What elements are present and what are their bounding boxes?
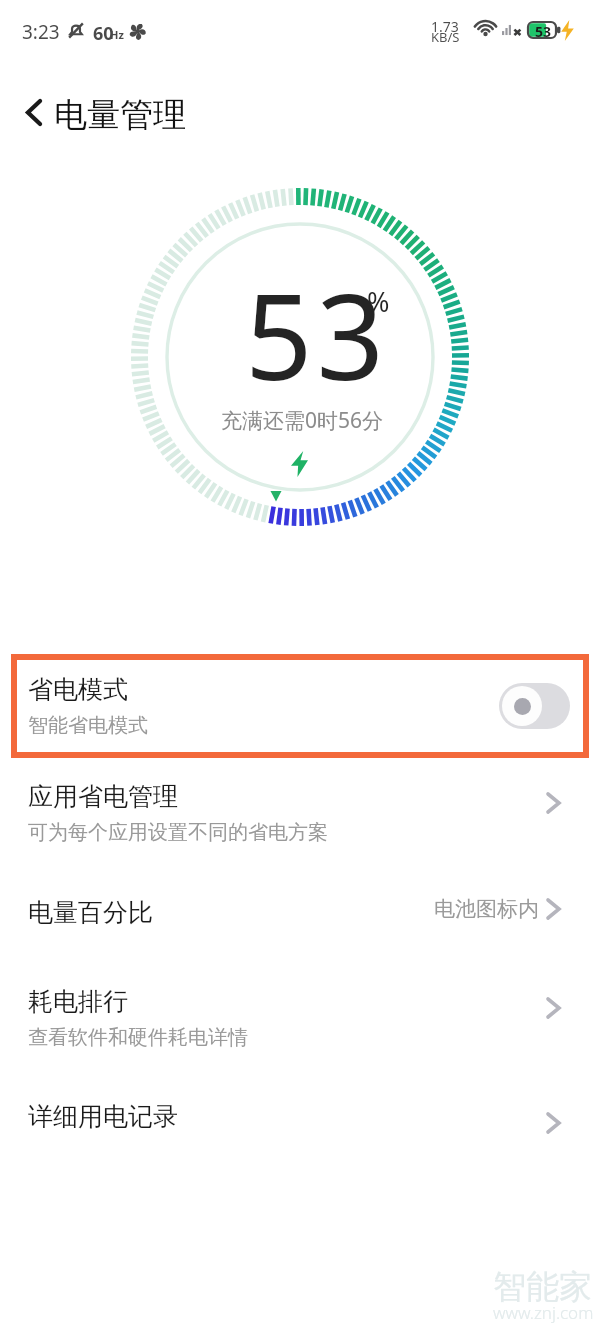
staticText: 1.73 <box>431 17 459 36</box>
staticText: Hz <box>110 27 124 42</box>
button[interactable]: 耗电排行 <box>0 963 600 1078</box>
staticText: 电量百分比 <box>28 897 153 928</box>
button[interactable]: 应用省电管理 <box>0 758 600 878</box>
staticText: 53 <box>535 22 552 40</box>
button[interactable]: Back <box>14 92 54 132</box>
staticText: 查看软件和硬件耗电详情 <box>28 1025 248 1050</box>
staticText: 智能家 <box>493 1266 592 1308</box>
button[interactable]: 电量百分比 <box>0 878 600 963</box>
staticText: % <box>367 283 390 320</box>
staticText: 3:23 <box>22 19 60 45</box>
button[interactable]: Power saving toggle <box>499 683 570 729</box>
button[interactable]: 省电模式 <box>11 654 589 758</box>
staticText: 耗电排行 <box>28 986 128 1017</box>
staticText: 可为每个应用设置不同的省电方案 <box>28 820 328 845</box>
staticText: 电量管理 <box>54 94 186 136</box>
staticText: www.znj.com <box>493 1301 594 1324</box>
staticText: 53 <box>245 254 388 415</box>
staticText: 电池图标内 <box>434 896 539 922</box>
staticText: 省电模式 <box>28 674 128 705</box>
staticText: 60 <box>93 21 114 46</box>
staticText: 智能省电模式 <box>28 713 148 738</box>
staticText: 应用省电管理 <box>28 781 178 812</box>
staticText: 充满还需0时56分 <box>221 406 384 435</box>
staticText: KB/S <box>431 28 460 46</box>
button[interactable]: 详细用电记录 <box>0 1078 600 1167</box>
staticText: 详细用电记录 <box>28 1101 178 1132</box>
